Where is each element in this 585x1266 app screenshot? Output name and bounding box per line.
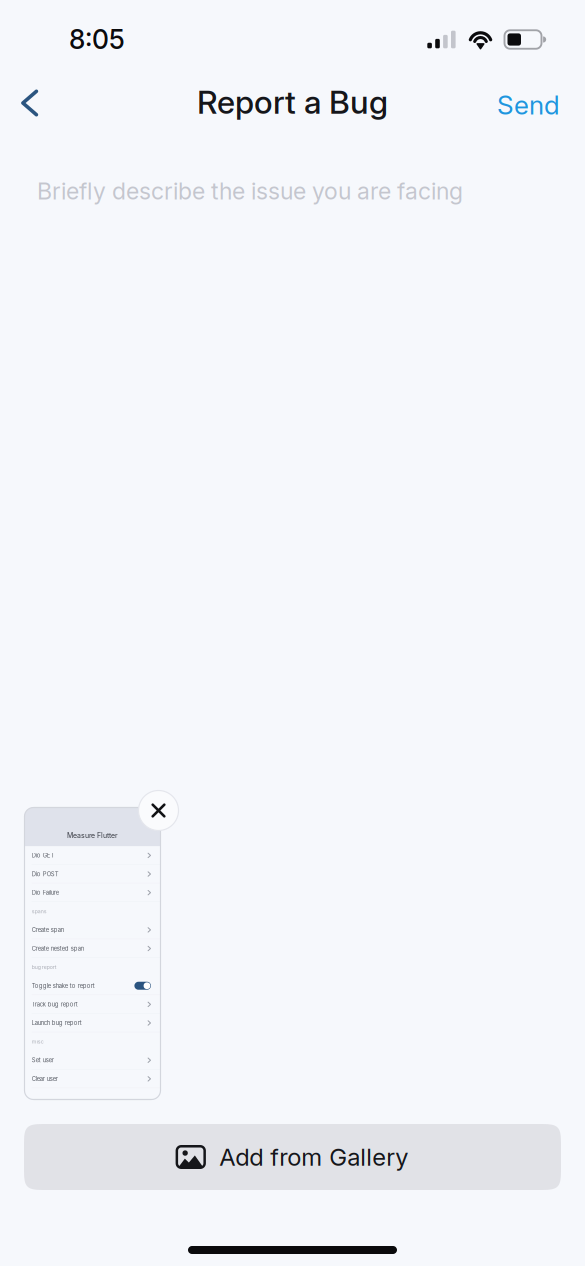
staticText: Report a Bug	[197, 83, 388, 121]
button[interactable]: Add from Gallery	[24, 1124, 561, 1190]
staticText: Track bug report	[32, 1001, 78, 1008]
staticText: Launch bug report	[32, 1019, 82, 1026]
button[interactable]: Send	[479, 73, 585, 131]
staticText: Send	[497, 89, 560, 121]
staticText: Toggle shake to report	[32, 982, 95, 989]
staticText: Create span	[32, 926, 64, 933]
staticText: Add from Gallery	[219, 1142, 408, 1171]
staticText: Dio GET	[32, 852, 55, 859]
button[interactable]: Back	[0, 76, 56, 128]
staticText: Dio POST	[32, 870, 59, 878]
staticText: Clear user	[32, 1075, 58, 1082]
staticText: misc	[32, 1038, 44, 1045]
staticText: 8:05	[69, 23, 125, 55]
button[interactable]: Remove screenshot	[137, 789, 179, 831]
staticText: bug report	[32, 964, 57, 970]
staticText: spans	[32, 908, 47, 914]
staticText: Create nested span	[32, 945, 84, 952]
staticText: Briefly describe the issue you are facin…	[37, 177, 463, 205]
staticText: Measure Flutter	[67, 831, 118, 840]
staticText: Set user	[32, 1057, 54, 1064]
staticText: Dio Failure	[32, 889, 59, 896]
